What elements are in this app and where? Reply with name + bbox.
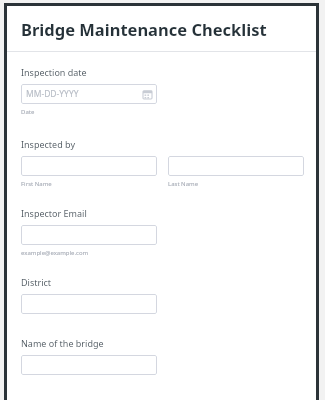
staticText: Bridge Maintenance Checklist Form [21,18,306,40]
button[interactable] [21,225,157,245]
staticText: MM-DD-YYYY [26,88,143,100]
button[interactable]: MM-DD-YYYY [21,84,157,104]
staticText: Last Name [168,180,199,188]
button[interactable] [21,156,157,176]
button[interactable] [21,294,157,314]
staticText: District [21,276,52,288]
staticText: First Name [21,180,52,188]
staticText: Name of the bridge [21,337,104,349]
button[interactable] [168,156,304,176]
staticText: Inspected by [21,138,76,150]
staticText: Inspector Email [21,207,87,219]
staticText: example@example.com [21,249,89,257]
staticText: Inspection date [21,66,87,78]
other: Open calendar picker [143,90,152,99]
button[interactable] [21,355,157,375]
staticText: Date [21,108,35,116]
